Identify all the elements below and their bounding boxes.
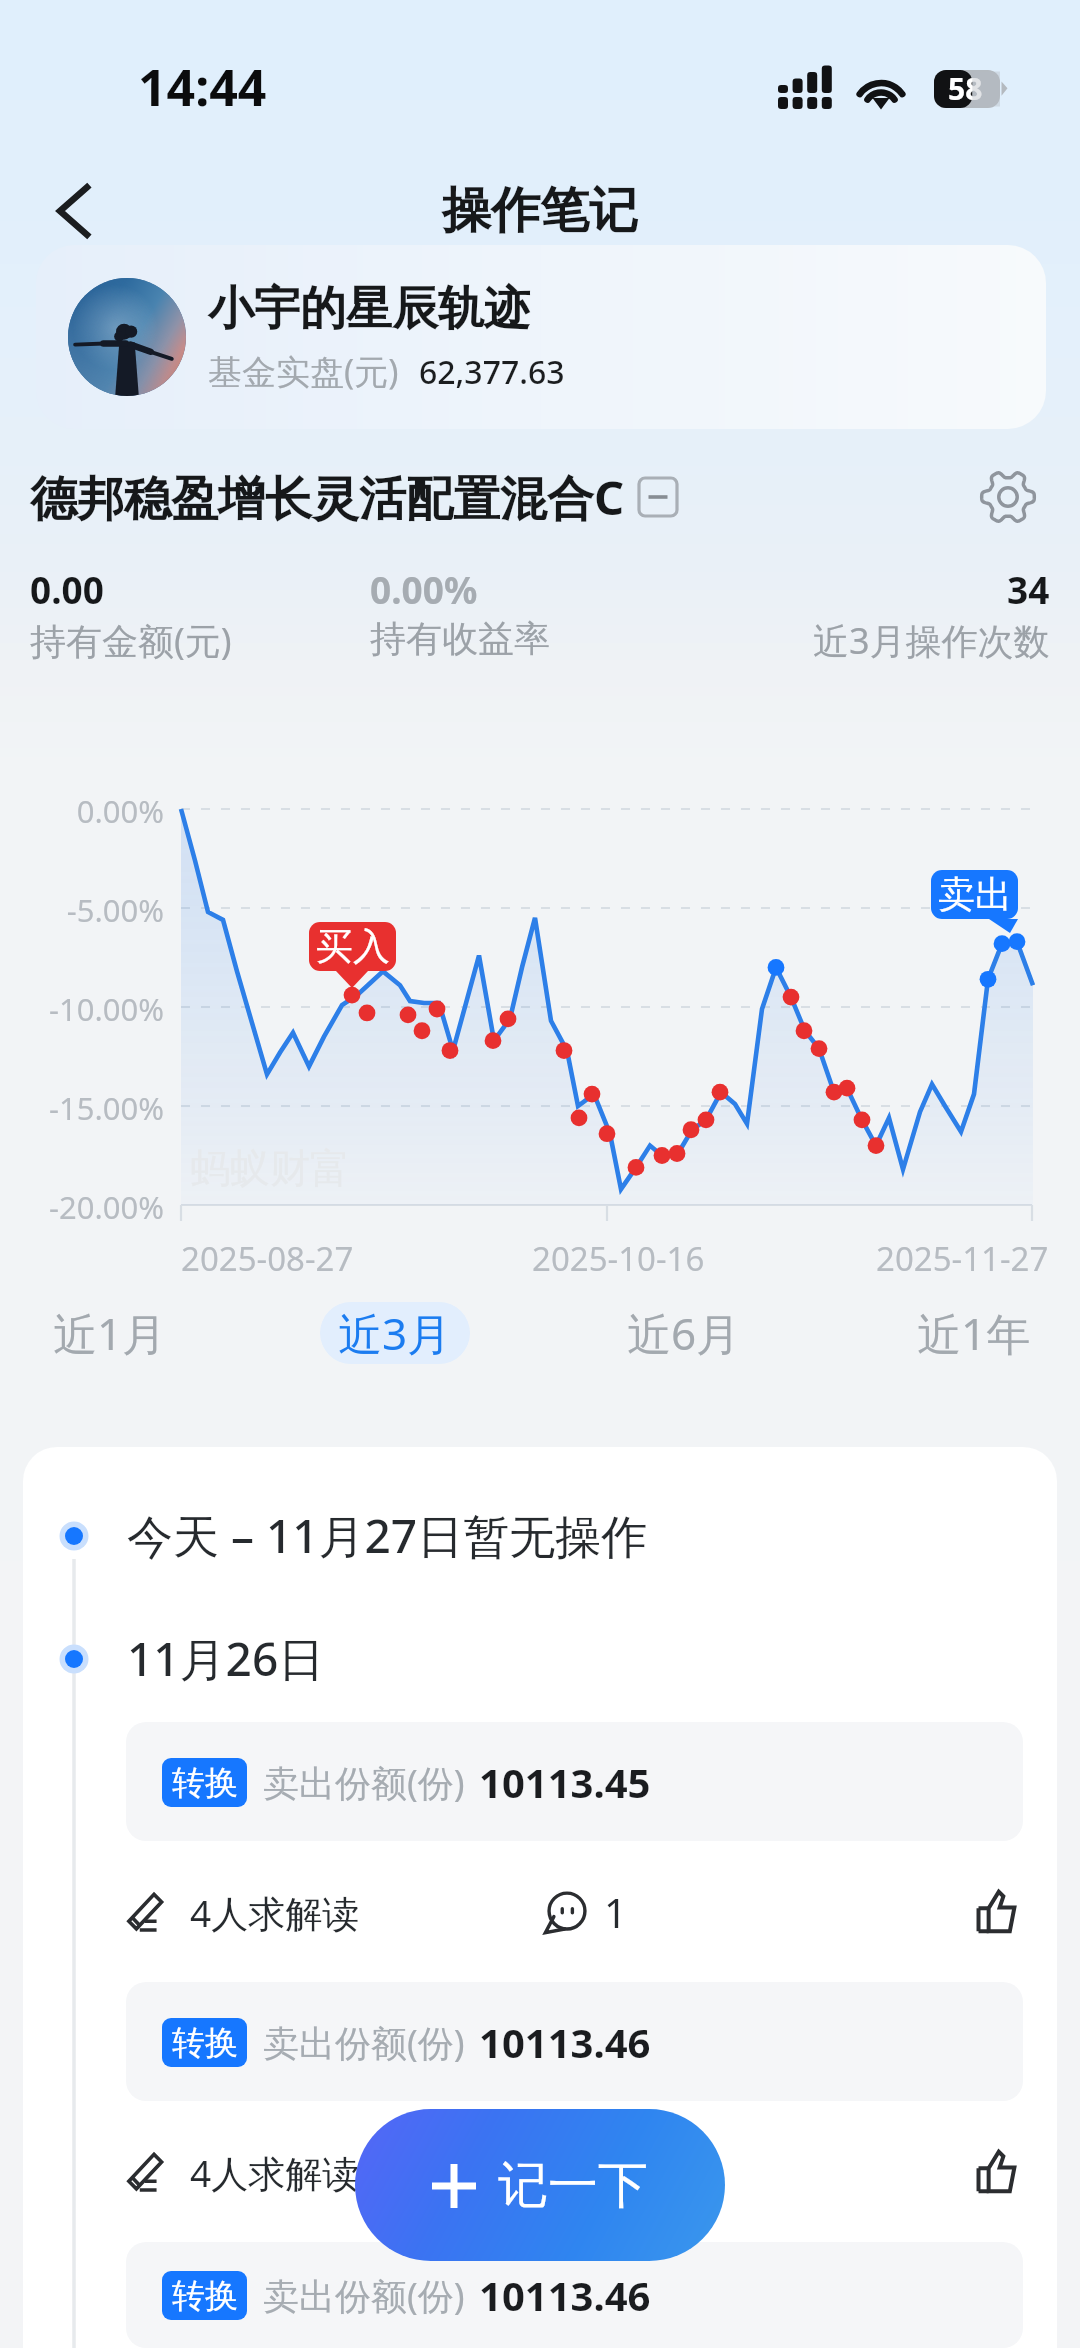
staticText: 转换 xyxy=(172,2275,238,2317)
staticText: 0.00 xyxy=(30,564,104,614)
staticText: -10.00% xyxy=(4,988,164,1030)
staticText: 近3月 xyxy=(338,1303,452,1363)
staticText: 持有收益率 xyxy=(370,616,550,661)
staticText: 基金实盘(元) xyxy=(208,348,399,394)
staticText: -15.00% xyxy=(4,1087,164,1129)
button[interactable]: 1 xyxy=(544,2124,684,2220)
staticText: 卖出份额(份) xyxy=(263,2018,465,2067)
staticText: 58 xyxy=(948,68,983,109)
staticText: -20.00% xyxy=(4,1186,164,1228)
button[interactable]: 转换 xyxy=(126,2242,1023,2348)
button[interactable]: 近1月 xyxy=(35,1302,185,1364)
staticText: 0.00% xyxy=(370,564,478,614)
button[interactable]: 转换 xyxy=(126,1722,1023,1841)
button[interactable]: Settings xyxy=(966,455,1050,539)
button[interactable]: Like xyxy=(953,2129,1039,2215)
button[interactable]: Like xyxy=(953,1869,1039,1955)
staticText: 卖出份额(份) xyxy=(263,2271,465,2320)
staticText: 蚂蚁财富 xyxy=(190,1143,350,1193)
staticText: 62,377.63 xyxy=(419,350,565,394)
button[interactable]: 4人求解读 xyxy=(128,1864,396,1960)
staticText: 持有金额(元) xyxy=(30,616,232,665)
button[interactable]: 近3月 xyxy=(320,1302,470,1364)
staticText: -5.00% xyxy=(4,889,164,931)
button[interactable]: Back xyxy=(26,176,122,245)
staticText: 2025-10-16 xyxy=(532,1236,705,1281)
staticText: 10113.46 xyxy=(479,2015,651,2069)
staticText: 1 xyxy=(604,2145,627,2199)
staticText: 4人求解读 xyxy=(190,1887,360,1938)
staticText: 近1年 xyxy=(917,1303,1031,1363)
staticText: 1 xyxy=(604,1885,627,1939)
staticText: 近1月 xyxy=(53,1303,167,1363)
staticText: 14:44 xyxy=(138,53,267,121)
staticText: 记一下 xyxy=(498,2154,648,2217)
staticText: 4人求解读 xyxy=(190,2147,360,2198)
staticText: 2025-08-27 xyxy=(181,1236,354,1281)
button[interactable]: 转换 xyxy=(126,1982,1023,2101)
staticText: 德邦稳盈增长灵活配置混合C xyxy=(30,465,625,529)
button[interactable]: 小宇的星辰轨迹 xyxy=(36,245,1046,429)
button[interactable]: 4人求解读 xyxy=(128,2124,396,2220)
staticText: 10113.45 xyxy=(479,1755,651,1809)
staticText: 10113.46 xyxy=(479,2268,651,2322)
staticText: 转换 xyxy=(172,1762,238,1804)
staticText: 34 xyxy=(1007,564,1050,614)
staticText: 小宇的星辰轨迹 xyxy=(208,280,530,338)
staticText: 近3月操作次数 xyxy=(813,616,1050,665)
staticText: 卖出 xyxy=(938,871,1012,918)
staticText: 2025-11-27 xyxy=(876,1236,1049,1281)
button[interactable]: 1 xyxy=(544,1864,684,1960)
staticText: 转换 xyxy=(172,2022,238,2064)
button[interactable]: 近6月 xyxy=(609,1302,759,1364)
button[interactable]: 记一下 xyxy=(355,2109,725,2261)
staticText: 卖出份额(份) xyxy=(263,1758,465,1807)
staticText: 近6月 xyxy=(627,1303,741,1363)
staticText: 0.00% xyxy=(4,790,164,832)
staticText: 买入 xyxy=(316,923,390,970)
staticText: 今天 – 11月27日暂无操作 xyxy=(127,1504,648,1567)
button[interactable]: 近1年 xyxy=(899,1302,1049,1364)
staticText: 11月26日 xyxy=(127,1627,325,1690)
staticText: 操作笔记 xyxy=(442,180,638,242)
